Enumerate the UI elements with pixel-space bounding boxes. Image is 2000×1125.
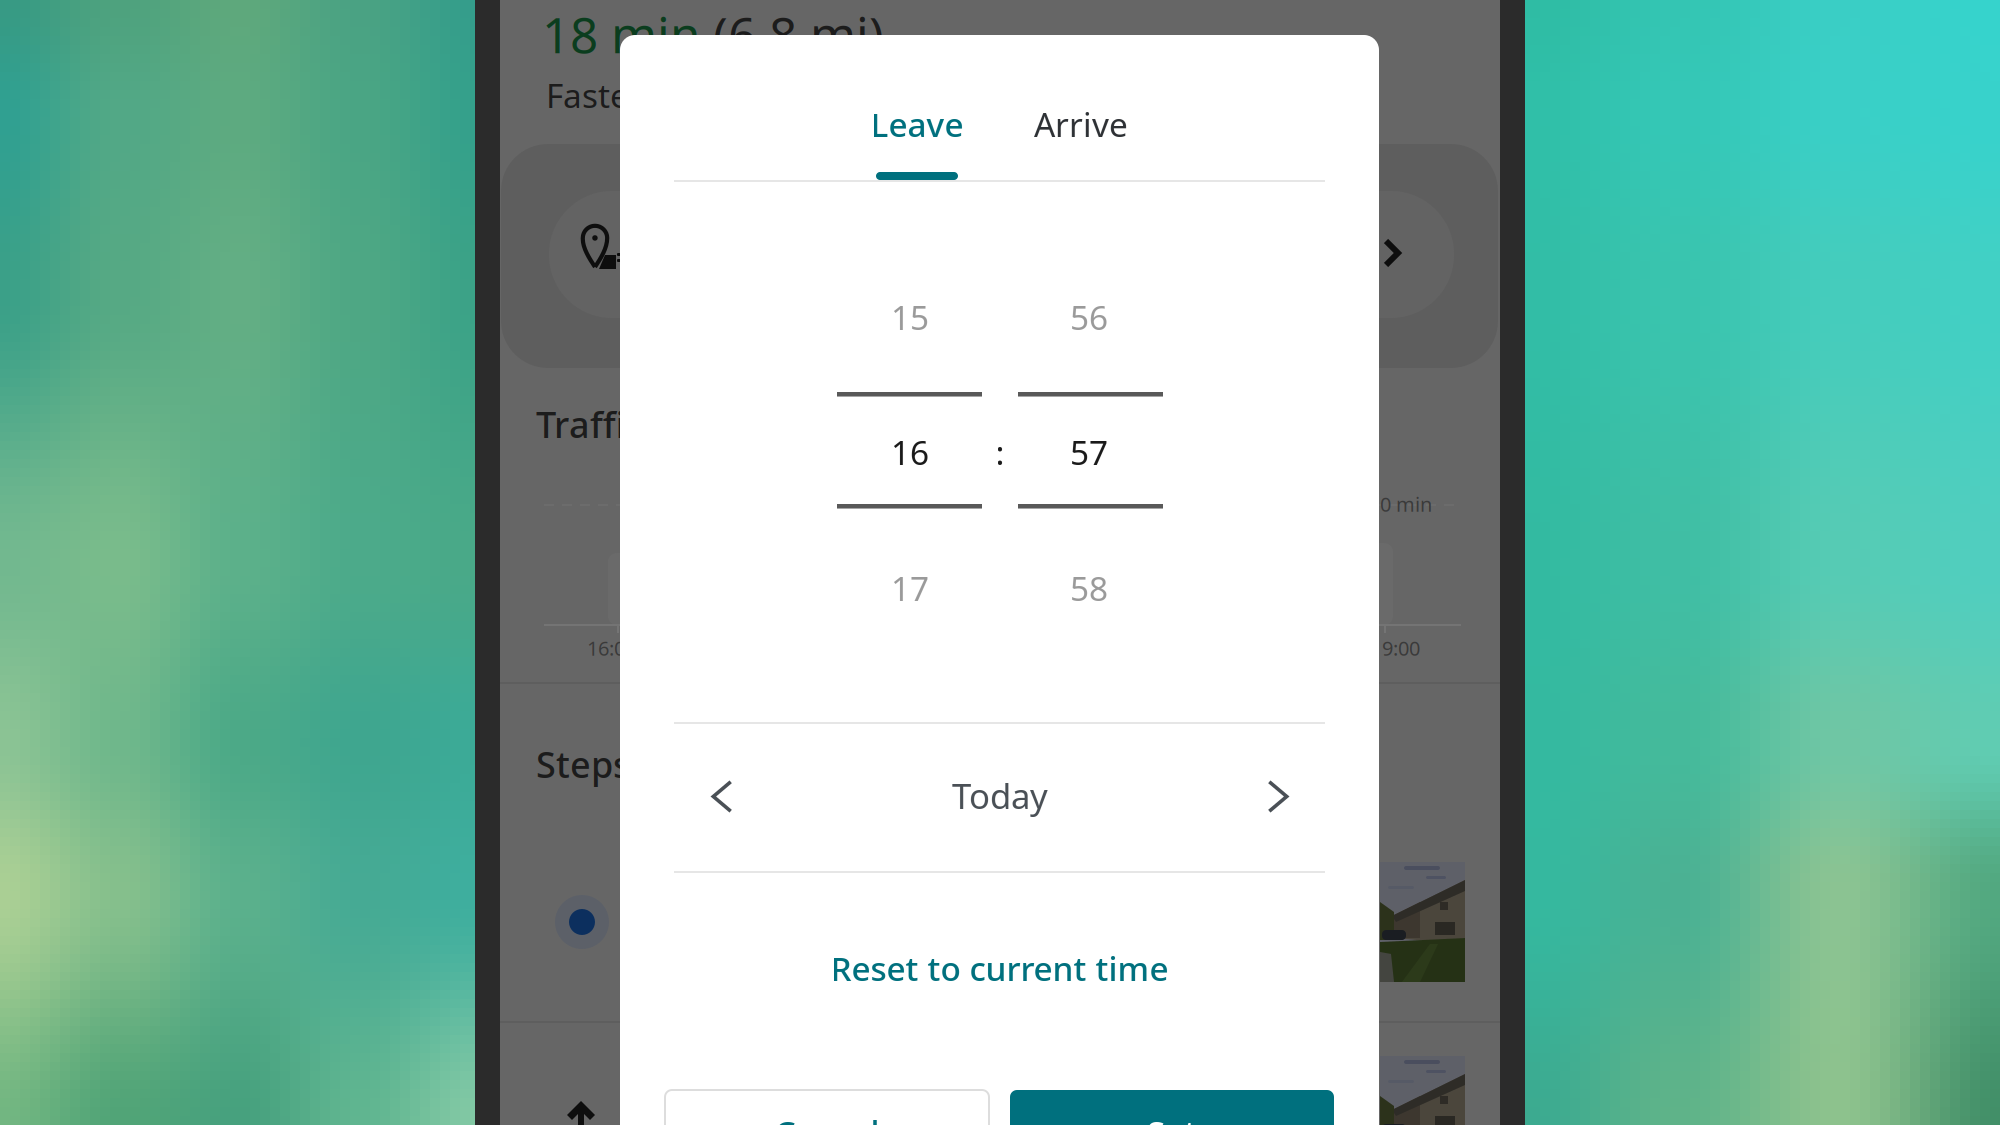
staticText: 57 [1070,430,1108,474]
staticText: Fastest route now [546,73,826,117]
staticText: : [995,430,1004,474]
staticText: 56 [1070,295,1108,339]
staticText: Set [1147,1110,1197,1125]
staticText: 16:00 [587,635,636,661]
staticText: 58 [1070,566,1108,610]
staticText: 15 [891,295,929,339]
staticText: (6.8 mi) [700,1,884,67]
staticText: Traffic [536,400,643,448]
button[interactable]: Cancel [665,1090,989,1125]
staticText: Arrive [1034,102,1128,146]
staticText: Leave [870,102,963,146]
staticText: Cancel [774,1110,879,1125]
button[interactable]: Arrive [1011,69,1151,179]
staticText: Today [952,772,1048,818]
staticText: 16 [891,430,929,474]
button[interactable]: Leave [847,69,987,179]
staticText: Reset to current time [830,946,1168,990]
staticText: 10 min [1369,491,1432,517]
button[interactable]: Next day [1226,722,1330,871]
staticText: Steps & destination [536,740,872,788]
button[interactable]: Reset to current time [620,908,1379,1028]
staticText: 17 [891,566,929,610]
button[interactable]: Set [1010,1090,1334,1125]
button[interactable]: Previous day [670,722,774,871]
staticText: 18 min [542,1,700,67]
staticText: 19:00 [1371,635,1420,661]
